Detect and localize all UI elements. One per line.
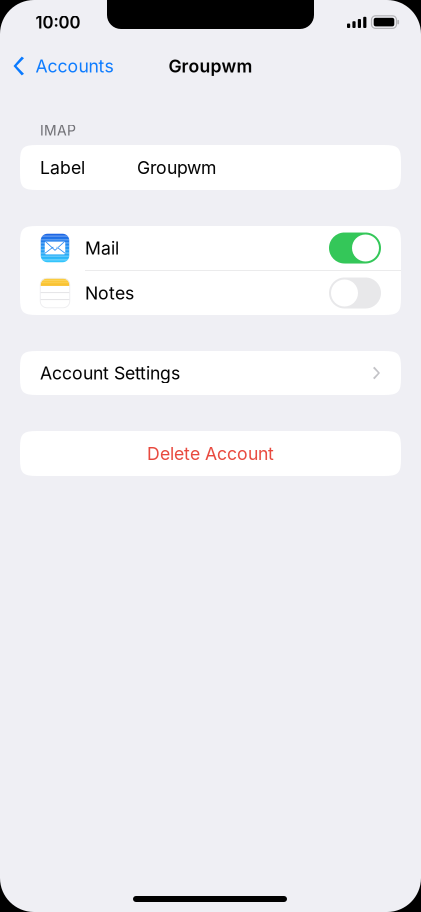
staticText: IMAP <box>40 122 76 139</box>
button[interactable]: Delete Account <box>20 431 401 476</box>
staticText: Delete Account <box>147 443 274 464</box>
button[interactable]: Notes <box>20 271 401 315</box>
button[interactable]: Accounts <box>0 44 125 88</box>
staticText: Groupwm <box>137 157 216 178</box>
staticText: Groupwm <box>168 55 252 77</box>
staticText: 10:00 <box>35 12 80 33</box>
staticText: Account Settings <box>40 362 180 384</box>
staticText: Notes <box>85 282 134 304</box>
button[interactable]: Mail <box>20 226 401 270</box>
staticText: Mail <box>85 237 119 259</box>
staticText: Label <box>40 157 85 178</box>
button[interactable]: Account Settings <box>20 351 401 395</box>
staticText: Accounts <box>35 55 113 77</box>
